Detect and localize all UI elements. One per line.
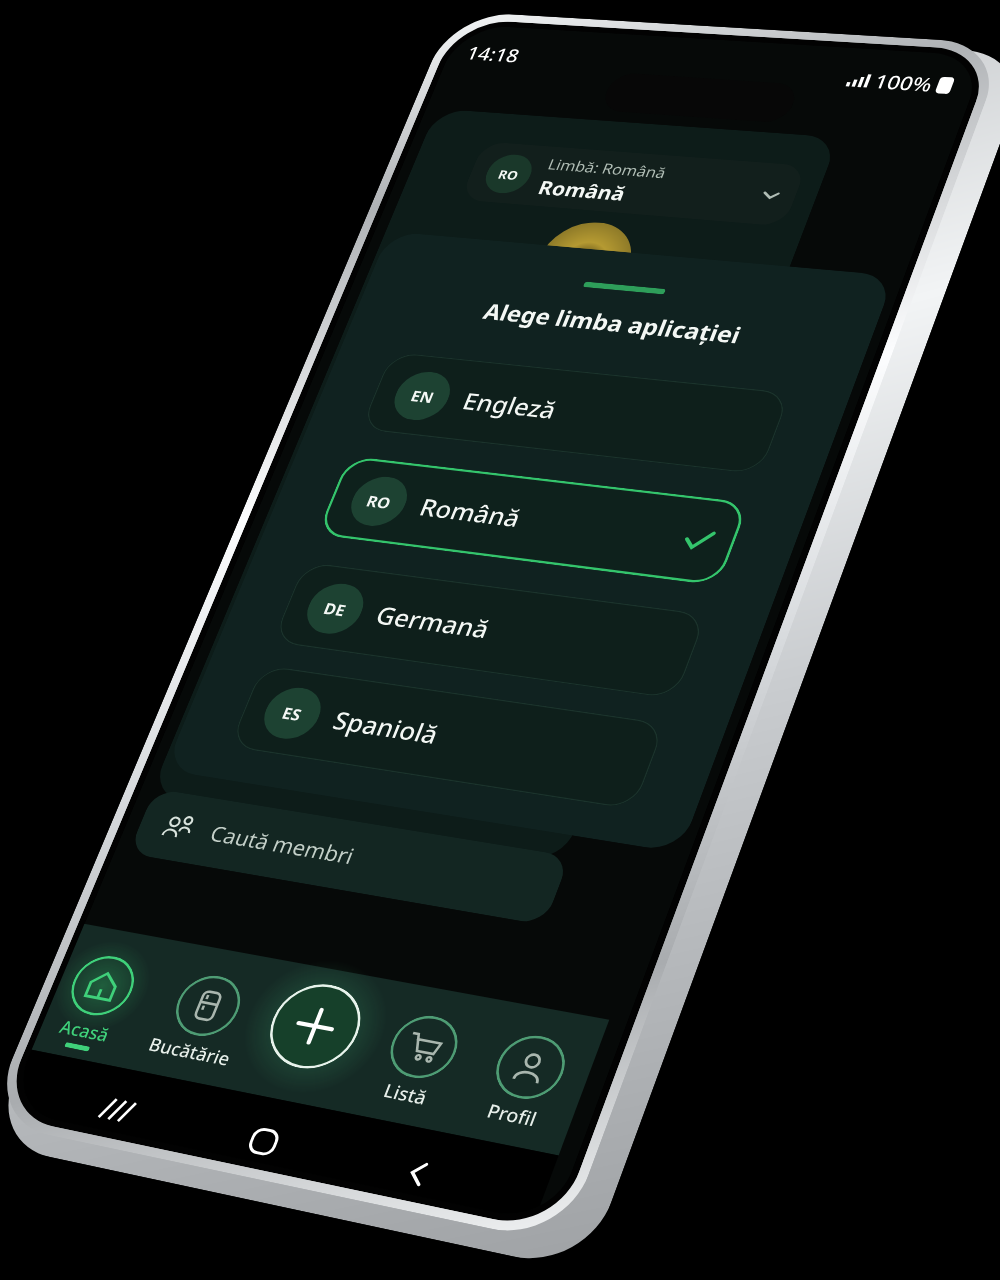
button[interactable]: EN (65, 316, 383, 386)
staticText: Profil (361, 895, 397, 914)
staticText: Germană (138, 526, 227, 553)
button[interactable]: ES (65, 594, 383, 664)
button[interactable]: Caută membri (21, 707, 351, 762)
button[interactable]: Bucătărie (90, 844, 170, 914)
other: Înapoi (317, 948, 341, 972)
button[interactable]: Acasă (10, 844, 84, 920)
button[interactable]: RO (65, 410, 383, 480)
button[interactable]: Listă (259, 844, 339, 914)
button[interactable]: DE (65, 504, 383, 574)
button[interactable]: Profil (339, 844, 419, 914)
staticText: Caută membri (79, 723, 194, 746)
other: Recente (81, 949, 107, 969)
staticText: Spaniolă (138, 616, 220, 643)
staticText: Alege limba aplicației (25, 259, 427, 285)
button[interactable]: Adaugă (182, 835, 248, 901)
